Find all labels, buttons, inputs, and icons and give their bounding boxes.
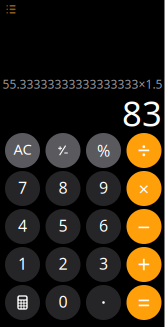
button[interactable]: 5 — [45, 209, 80, 244]
button[interactable]: 4 — [5, 209, 40, 244]
button[interactable]: 7 — [5, 171, 40, 206]
staticText: 4 — [18, 215, 27, 236]
staticText: AC — [13, 139, 31, 159]
button[interactable]: Calculator — [5, 285, 40, 320]
staticText: 2 — [58, 253, 67, 274]
button[interactable]: Divide — [126, 133, 161, 168]
staticText: 83 — [122, 90, 162, 136]
staticText: 3 — [99, 253, 108, 274]
button[interactable]: 0 — [45, 285, 80, 320]
button[interactable]: Multiply — [126, 171, 161, 206]
button[interactable]: Plus minus — [45, 133, 80, 168]
staticText: 8 — [58, 177, 67, 198]
button[interactable]: Percent — [86, 133, 121, 168]
button[interactable]: Decimal point — [86, 285, 121, 320]
staticText: 6 — [99, 215, 108, 236]
button[interactable]: History — [0, 0, 28, 19]
button[interactable]: 8 — [45, 171, 80, 206]
staticText: 5 — [58, 215, 67, 236]
button[interactable]: 9 — [86, 171, 121, 206]
staticText: 55.33333333333333333×1.5 — [2, 76, 162, 92]
staticText: = — [137, 287, 150, 317]
staticText: + — [137, 249, 150, 279]
staticText: − — [137, 211, 150, 241]
button[interactable]: 3 — [86, 247, 121, 282]
button[interactable]: 1 — [5, 247, 40, 282]
button[interactable]: 6 — [86, 209, 121, 244]
staticText: % — [97, 140, 110, 161]
staticText: 0 — [58, 291, 67, 312]
staticText: 9 — [99, 177, 108, 198]
staticText: × — [138, 176, 149, 201]
button[interactable]: Plus — [126, 247, 161, 282]
button[interactable]: 2 — [45, 247, 80, 282]
staticText: 7 — [18, 177, 27, 198]
button[interactable]: Minus — [126, 209, 161, 244]
button[interactable]: Equals — [126, 285, 161, 320]
staticText: 1 — [18, 253, 27, 274]
staticText: ÷ — [137, 135, 150, 165]
button[interactable]: AC — [5, 133, 40, 168]
